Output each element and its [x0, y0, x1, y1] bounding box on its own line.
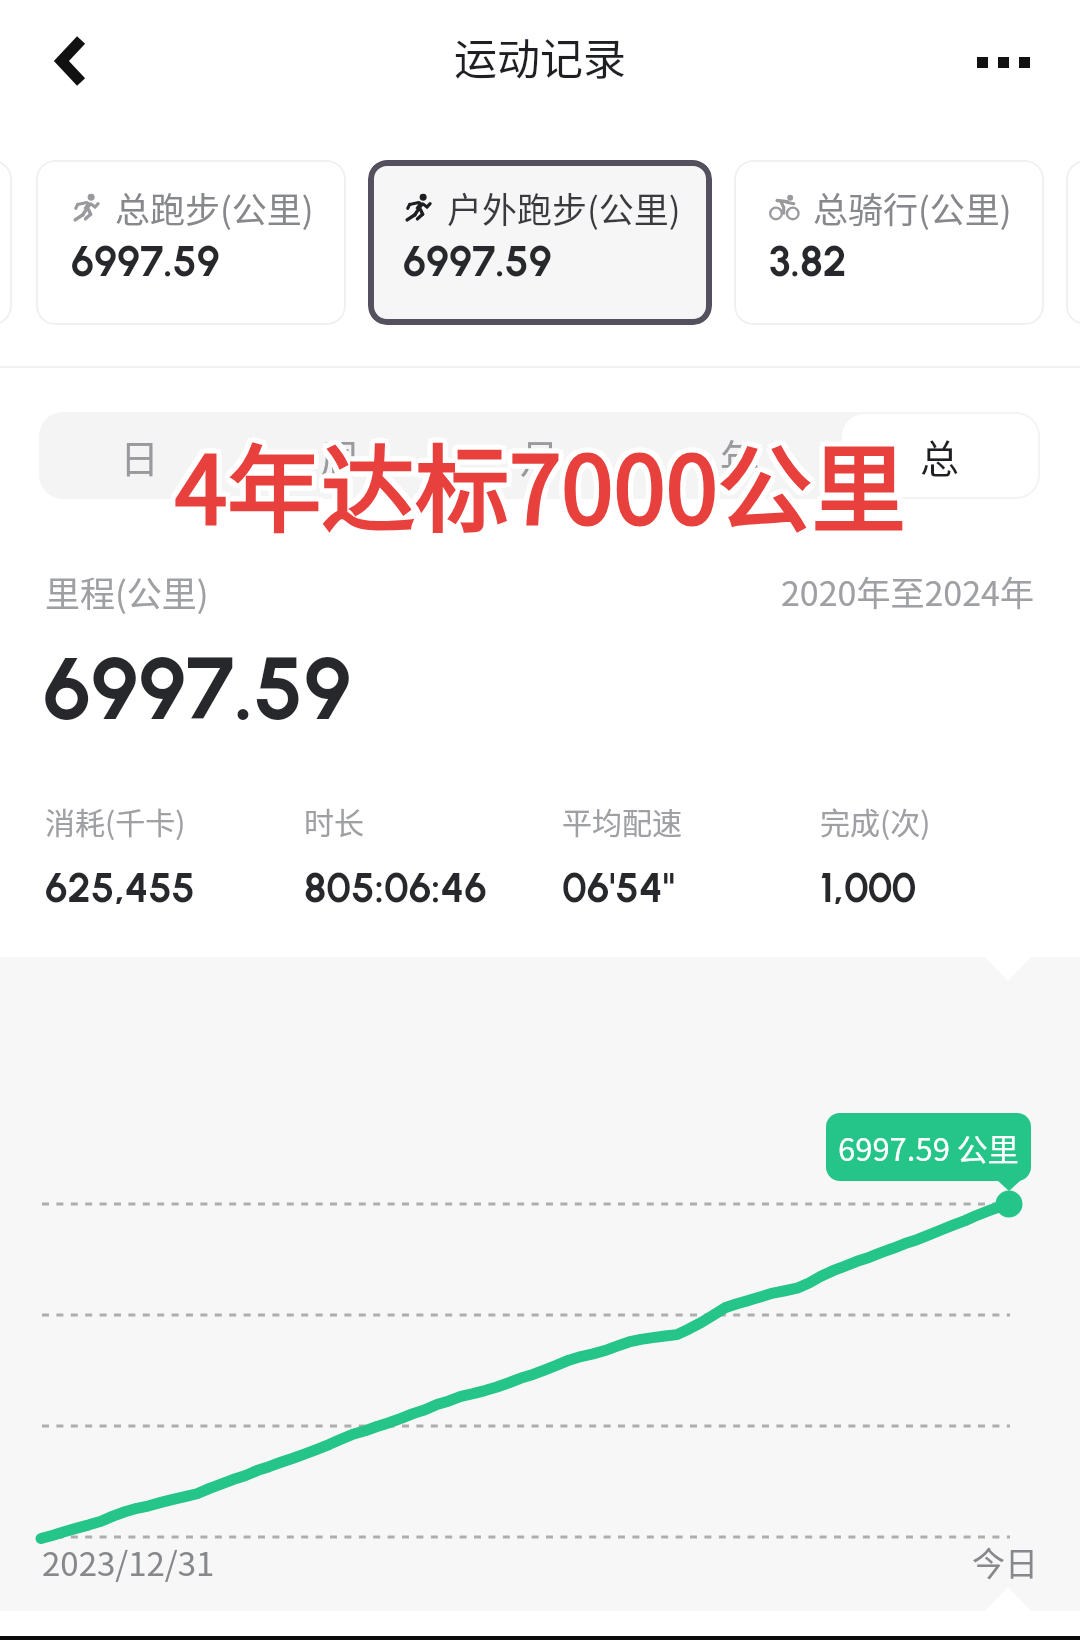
staticText: 4年达标7000公里	[170, 415, 901, 551]
staticText: 日	[120, 428, 160, 484]
staticText: 今日	[972, 1538, 1038, 1586]
staticText: 805:06:46	[304, 863, 487, 912]
staticText: 年	[720, 428, 760, 484]
staticText: 6997.59	[403, 236, 552, 286]
staticText: 3.82	[769, 236, 847, 286]
staticText: 2020年至2024年	[781, 567, 1034, 616]
button[interactable]: 总骑行(公里)	[734, 160, 1044, 325]
staticText: 4年达标7000公里	[171, 419, 902, 555]
button[interactable]: 总步行(公里)	[0, 160, 12, 325]
staticText: 4年达标7000公里	[180, 415, 911, 551]
button[interactable]: 总	[842, 414, 1038, 497]
staticText: 4年达标7000公里	[175, 415, 906, 551]
staticText: 625,455	[45, 863, 196, 912]
staticText: 里程(公里)	[45, 566, 209, 617]
staticText: 6997.59	[43, 636, 352, 740]
button[interactable]: 户外跑步(公里)	[368, 160, 712, 325]
staticText: 06'54"	[562, 863, 675, 912]
staticText: 完成(次)	[820, 799, 931, 842]
staticText: 消耗(千卡)	[45, 799, 186, 842]
staticText: 6997.59	[71, 236, 220, 286]
staticText: 总骑行(公里)	[813, 182, 1012, 233]
staticText: 时长	[304, 799, 364, 842]
staticText: 周	[320, 428, 360, 484]
staticText: 4年达标7000公里	[179, 411, 910, 547]
button[interactable]: 周	[242, 414, 438, 497]
button[interactable]: More options	[956, 29, 1050, 95]
staticText: 总跑步(公里)	[115, 182, 314, 233]
staticText: 4年达标7000公里	[179, 419, 910, 555]
staticText: 月	[520, 428, 560, 484]
staticText: 4年达标7000公里	[175, 410, 906, 546]
staticText: 1,000	[820, 863, 917, 912]
button[interactable]: 总游泳(公里)	[1066, 160, 1080, 325]
button[interactable]: Back	[38, 28, 104, 94]
staticText: 总	[920, 428, 960, 484]
staticText: 4年达标7000公里	[171, 411, 902, 547]
button[interactable]: 年	[642, 414, 838, 497]
button[interactable]: 日	[41, 414, 238, 497]
staticText: 平均配速	[562, 799, 682, 842]
staticText: 户外跑步(公里)	[447, 182, 681, 233]
staticText: 6997.59 公里	[838, 1125, 1019, 1170]
button[interactable]: 月	[442, 414, 638, 497]
staticText: 4年达标7000公里	[175, 420, 906, 556]
staticText: 运动记录	[454, 25, 626, 87]
staticText: 2023/12/31	[42, 1538, 215, 1586]
button[interactable]: 总跑步(公里)	[36, 160, 346, 325]
